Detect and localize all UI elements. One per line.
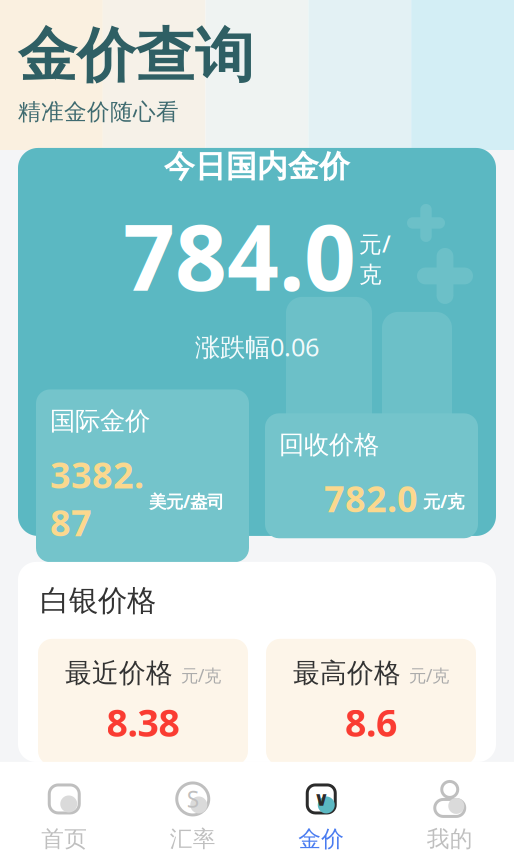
staticText: 克 (359, 261, 382, 288)
staticText: 回收价格 (279, 429, 379, 460)
staticText: 元/克 (423, 490, 464, 513)
button[interactable]: 最近价格 (38, 639, 248, 765)
button[interactable]: 国际金价 (36, 389, 249, 562)
button[interactable]: 首页 (0, 776, 128, 857)
staticText: 元/克 (181, 664, 221, 687)
staticText: ∨ (313, 788, 329, 810)
staticText: 金价 (298, 825, 344, 853)
staticText: 今日国内金价 (164, 148, 350, 185)
button[interactable]: 回收价格 (265, 413, 478, 538)
staticText: 精准金价随心看 (18, 98, 179, 126)
staticText: 白银价格 (40, 583, 156, 619)
staticText: 3382.87 (50, 451, 144, 546)
staticText: 最近价格 (65, 657, 173, 690)
staticText: 美元/盎司 (149, 490, 224, 513)
staticText: 8.38 (106, 698, 179, 747)
staticText: 784.0 (123, 195, 356, 316)
button[interactable]: 我的 (385, 776, 514, 857)
staticText: 782.0 (324, 474, 418, 522)
staticText: 首页 (41, 825, 87, 853)
staticText: 元/克 (409, 664, 449, 687)
staticText: S (187, 784, 199, 814)
staticText: 8.6 (345, 698, 397, 747)
button[interactable]: ∨ (257, 776, 385, 857)
staticText: 最高价格 (293, 657, 401, 690)
staticText: 元/ (359, 229, 391, 259)
button[interactable]: S (128, 776, 257, 857)
button[interactable]: 最高价格 (266, 639, 476, 765)
staticText: 汇率 (170, 825, 216, 853)
staticText: 国际金价 (50, 405, 150, 436)
staticText: 我的 (427, 825, 473, 853)
staticText: 金价查询 (18, 20, 254, 92)
staticText: 涨跌幅0.06 (195, 330, 319, 363)
